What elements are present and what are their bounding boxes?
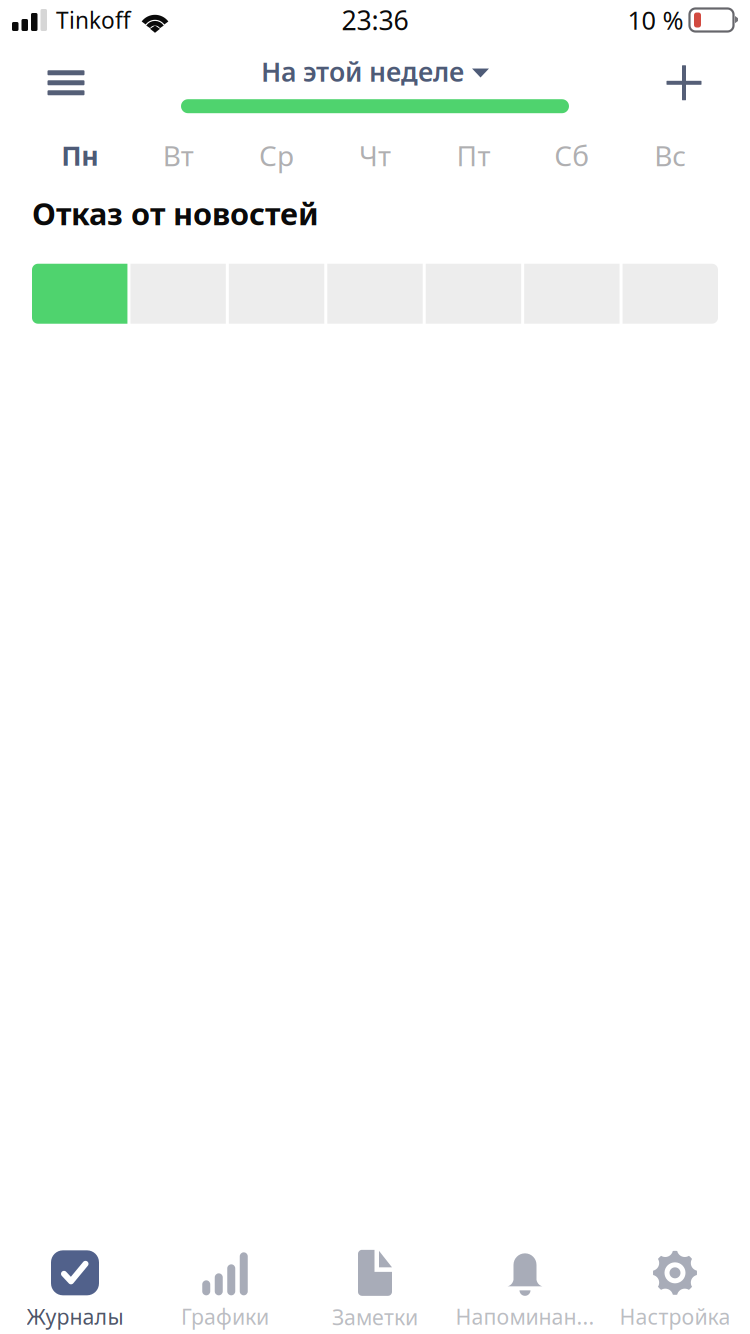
staticText: Вс [654,137,686,174]
button[interactable]: Чт [327,137,423,174]
button[interactable]: Сб [524,137,619,174]
staticText: 10 % [627,3,683,37]
staticText: Пт [456,137,490,174]
button[interactable]: Журналы [0,1229,150,1334]
button[interactable]: Add [648,55,720,111]
staticText: Напоминан... [455,1302,594,1331]
button[interactable]: Вт [130,137,226,174]
staticText: Вт [163,137,194,174]
staticText: Tinkoff [56,5,131,35]
staticText: На этой неделе [261,54,464,89]
staticText: Чт [359,137,391,174]
button[interactable]: Графики [150,1229,300,1334]
staticText: Отказ от новостей [32,193,319,234]
staticText: Журналы [26,1302,123,1331]
button[interactable]: Напоминан... [450,1229,600,1334]
button[interactable]: Menu [30,55,102,111]
staticText: Настройка [619,1302,730,1331]
button[interactable]: Пн [32,138,127,173]
button[interactable]: Вс [623,137,718,174]
button[interactable]: Ср [229,137,324,174]
button[interactable]: Отказ от новостей [32,177,319,234]
button[interactable]: Заметки [300,1229,450,1334]
button[interactable]: На этой неделе [181,47,569,113]
staticText: Графики [181,1302,269,1331]
staticText: Заметки [332,1303,418,1331]
staticText: Ср [259,137,294,174]
button[interactable]: Настройка [600,1229,750,1334]
staticText: Сб [554,137,589,174]
button[interactable] [32,264,127,324]
button[interactable]: Пт [426,137,521,174]
staticText: Пн [61,138,98,173]
staticText: 23:36 [341,2,408,38]
